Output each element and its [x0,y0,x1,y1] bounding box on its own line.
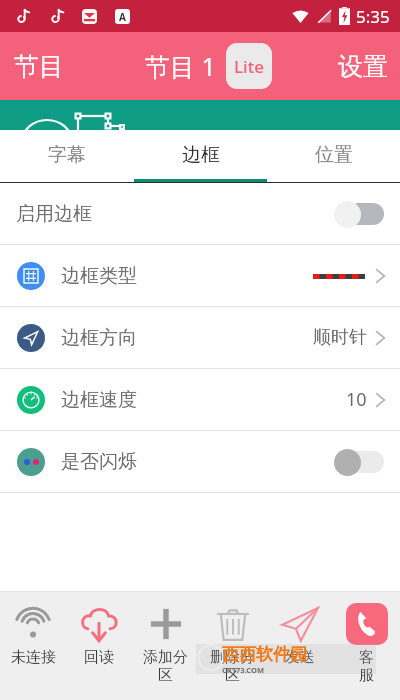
staticText: 5:35 [356,5,390,28]
staticText: 是否闪烁 [61,450,137,474]
staticText: 设置 [338,51,388,82]
button[interactable]: 边框方向 [0,307,400,368]
button[interactable]: Toggle [334,447,386,477]
staticText: 边框速度 [61,388,137,412]
staticText: 发送 [285,648,315,667]
staticText: 字幕 [48,143,86,167]
staticText: 节目 [14,51,64,82]
button[interactable]: 未连接 [0,596,66,700]
staticText: 添加分 区 [143,648,188,685]
staticText: 位置 [315,143,353,167]
staticText: CR173.COM [222,665,265,674]
button[interactable]: 添加分 区 [132,596,199,700]
button[interactable]: 删除分 区 [199,596,266,700]
button[interactable]: Toggle [334,199,386,229]
button[interactable]: 客 服 [333,596,400,700]
staticText: 回读 [84,648,114,667]
staticText: 顺时针 [313,326,367,349]
staticText: 边框类型 [61,264,137,288]
button[interactable]: 设置 [326,32,400,100]
button[interactable]: 回读 [66,596,132,700]
staticText: 删除分 区 [210,648,255,685]
button[interactable]: 字幕 [0,130,134,179]
staticText: 客 服 [359,648,374,685]
button[interactable]: 启用边框 [0,183,400,244]
staticText: 10 [346,387,367,412]
staticText: 未连接 [11,648,56,667]
staticText: 边框方向 [61,326,137,350]
staticText: Lite [234,55,264,78]
staticText: 边框 [182,143,220,167]
staticText: 启用边框 [16,202,92,226]
button[interactable]: Lite [226,43,272,89]
staticText: 西西软件园 [222,644,307,665]
button[interactable]: 发送 [266,596,333,700]
button[interactable]: 位置 [267,130,400,179]
button[interactable]: 边框 [134,130,267,179]
staticText: 节目 1 [145,49,216,83]
button[interactable]: 边框类型 [0,245,400,306]
button[interactable]: 节目 [0,32,78,100]
button[interactable]: 边框速度 [0,369,400,430]
staticText: A [119,10,126,24]
button[interactable]: 是否闪烁 [0,431,400,492]
